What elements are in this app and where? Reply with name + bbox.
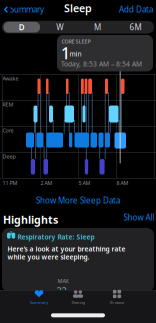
staticText: Show More Sleep Data (36, 195, 120, 206)
staticText: REM (2, 101, 13, 108)
staticText: while you were sleeping. (7, 252, 89, 261)
staticText: Awake (2, 75, 18, 82)
staticText: 8 AM (116, 179, 128, 186)
staticText: min (70, 50, 82, 58)
staticText: Add Data (119, 4, 153, 15)
staticText: M (94, 22, 101, 32)
button[interactable]: Summary (19, 288, 59, 306)
staticText: D (19, 22, 25, 32)
staticText: Respiratory Rate: Sleep (17, 232, 94, 241)
staticText: Show All (123, 212, 154, 223)
button[interactable]: W (42, 21, 78, 33)
button[interactable]: M (80, 21, 116, 33)
staticText: 5 AM (78, 179, 90, 186)
staticText: Deep (2, 153, 15, 160)
button[interactable]: Sharing (58, 288, 98, 306)
button[interactable]: Respiratory Rate: Sleep (2, 228, 154, 292)
staticText: Summary (10, 4, 44, 15)
button[interactable]: D (4, 22, 40, 33)
staticText: 2 AM (40, 179, 52, 186)
staticText: W (56, 22, 63, 32)
staticText: CORE SLEEP (61, 38, 90, 45)
button[interactable]: 6M (117, 21, 153, 33)
staticText: Browse (110, 300, 124, 305)
staticText: Today, 8:53 AM – 8:54 AM (61, 59, 142, 68)
staticText: 6M (129, 22, 141, 32)
staticText: 1 (61, 42, 70, 64)
staticText: Highlights (3, 212, 58, 227)
staticText: Core (2, 127, 13, 134)
button[interactable]: Summary (4, 4, 44, 15)
staticText: Here's a look at your breathing rate (7, 244, 125, 253)
button[interactable]: Show More Sleep Data (36, 195, 120, 206)
button[interactable]: Browse (97, 288, 137, 306)
button[interactable]: Add Data (119, 4, 153, 15)
staticText: Sleep (64, 1, 92, 15)
staticText: Summary (30, 300, 48, 305)
button[interactable]: Show All (123, 212, 154, 223)
staticText: 22 (56, 284, 66, 297)
staticText: Sharing (71, 300, 84, 305)
staticText: MAX (57, 277, 68, 285)
staticText: 11 PM (2, 179, 17, 186)
